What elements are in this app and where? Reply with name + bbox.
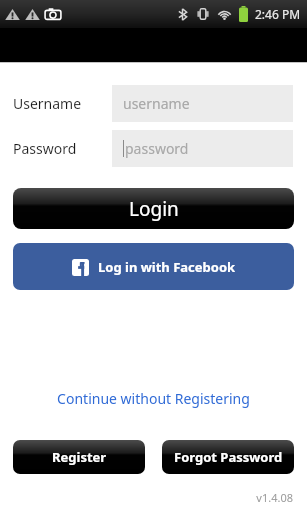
- button[interactable]: Login: [13, 188, 294, 229]
- staticText: Forgot Password: [174, 448, 283, 466]
- button[interactable]: Register: [13, 440, 145, 474]
- staticText: Login: [129, 196, 179, 222]
- staticText: v1.4.08: [0, 490, 293, 505]
- staticText: password: [125, 139, 189, 158]
- staticText: 2:46 PM: [255, 6, 301, 22]
- button[interactable]: Continue without Registering: [0, 386, 307, 411]
- button[interactable]: username: [112, 85, 293, 122]
- button[interactable]: Log in with Facebook: [13, 243, 294, 290]
- staticText: username: [123, 94, 190, 113]
- staticText: Username: [13, 94, 99, 113]
- button[interactable]: Forgot Password: [162, 440, 294, 474]
- staticText: Log in with Facebook: [98, 258, 236, 276]
- staticText: Password: [13, 139, 99, 158]
- button[interactable]: password: [112, 130, 293, 167]
- staticText: Register: [52, 448, 107, 466]
